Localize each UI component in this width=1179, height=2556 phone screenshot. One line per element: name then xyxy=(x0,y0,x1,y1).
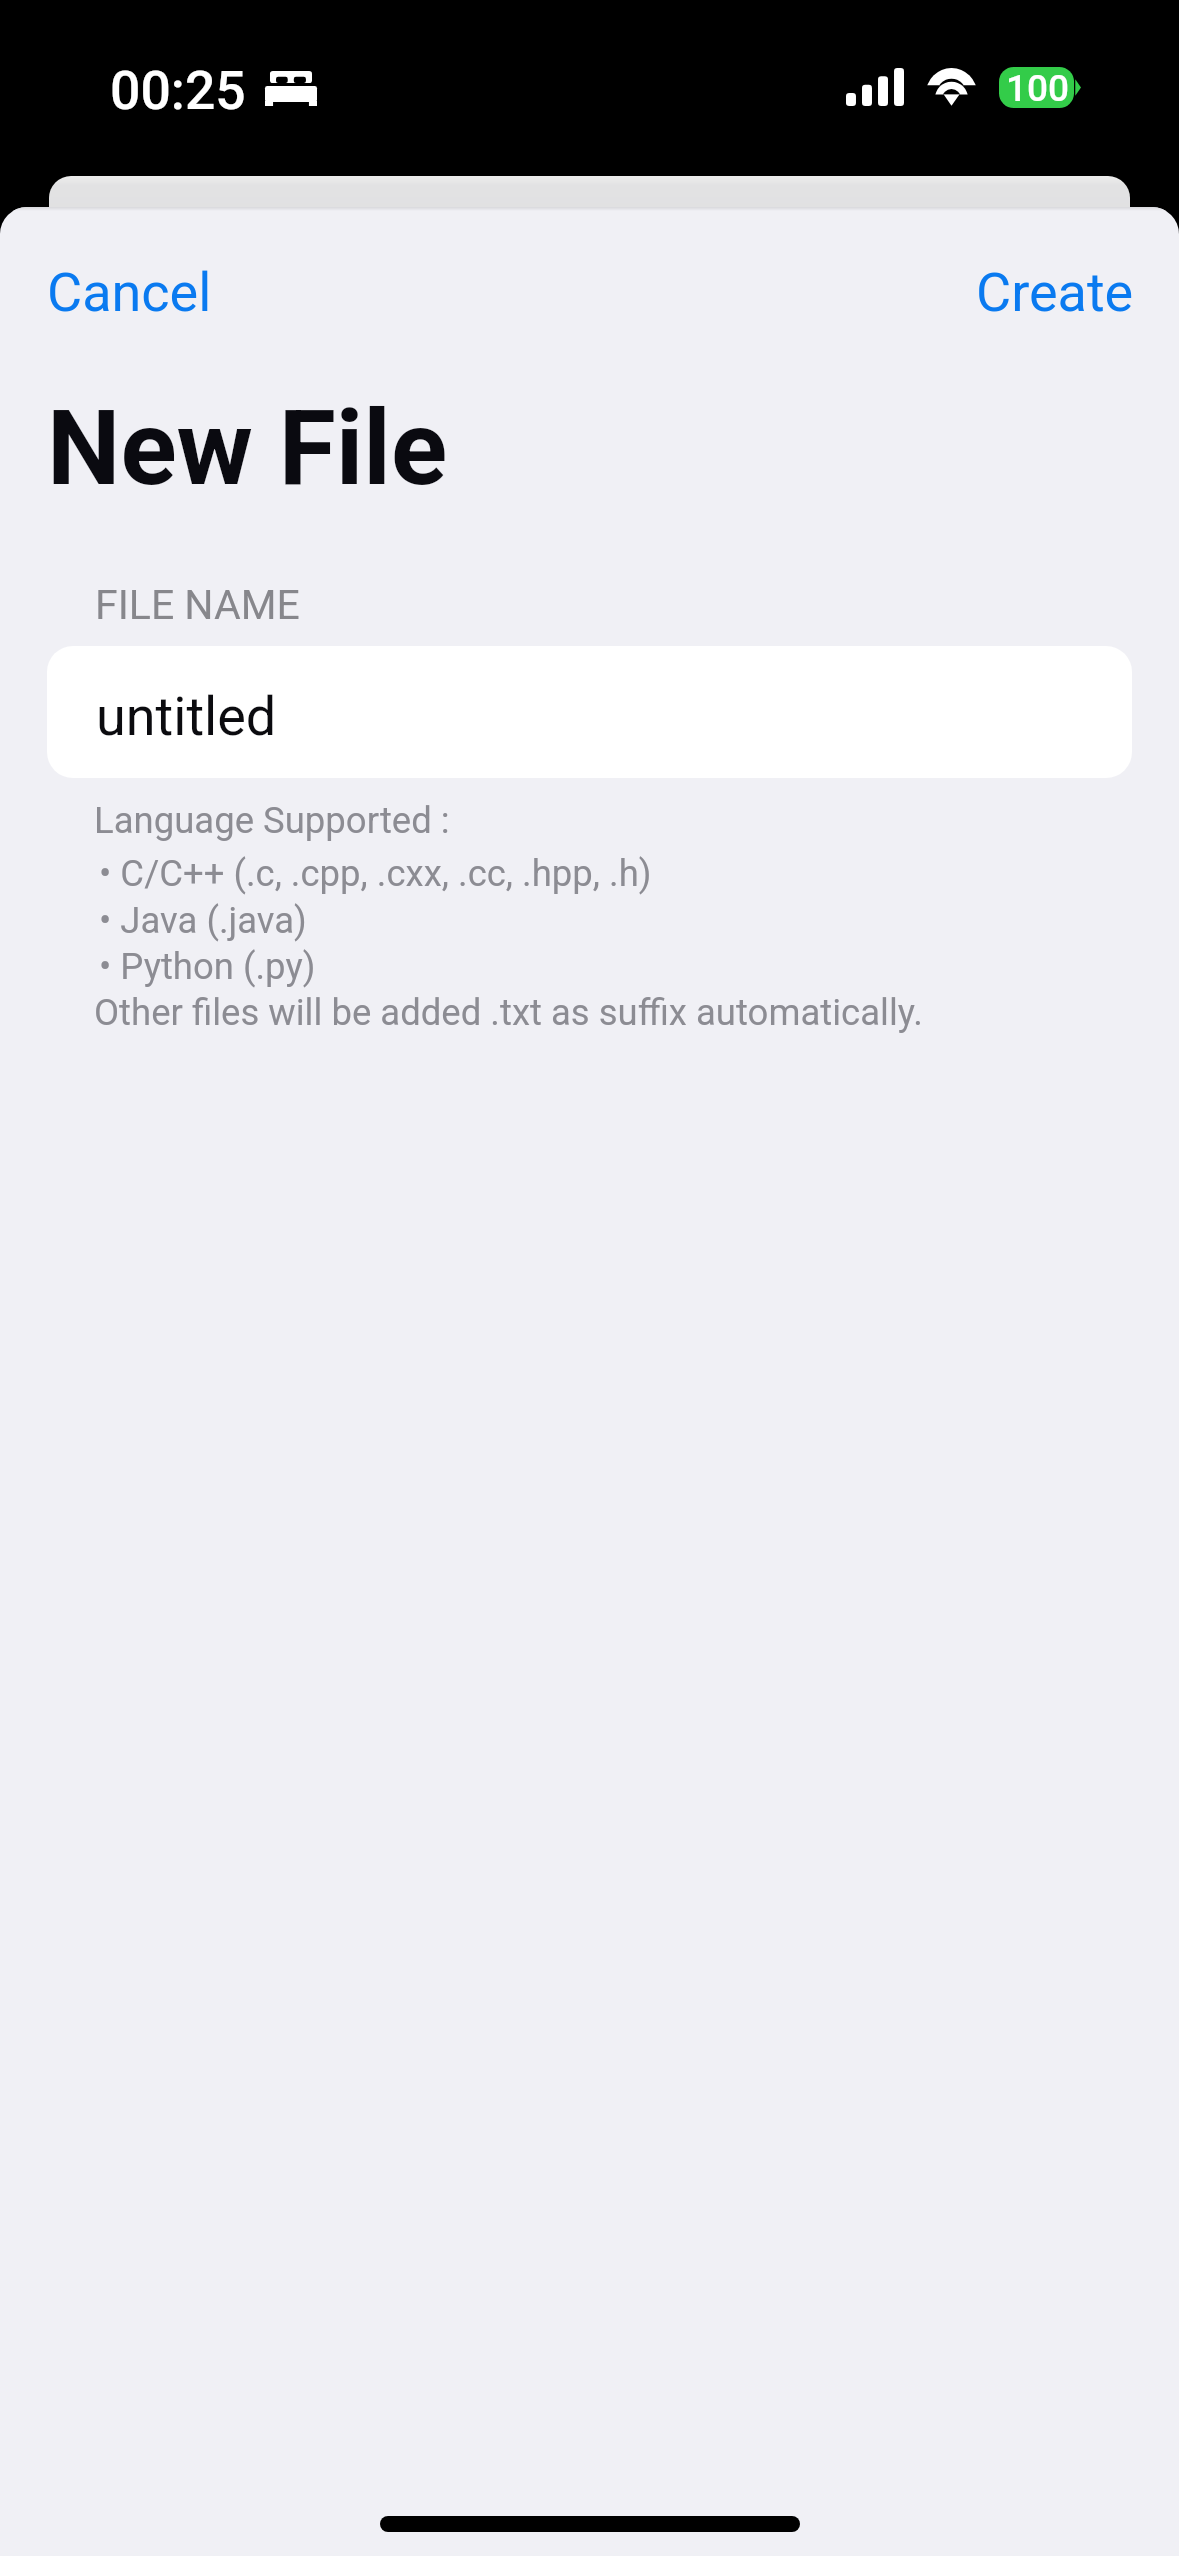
staticText: New File xyxy=(47,388,448,510)
staticText: Create xyxy=(976,261,1134,324)
other: Wi-Fi xyxy=(926,68,977,106)
staticText: 100 xyxy=(1006,67,1070,108)
other: Cellular signal xyxy=(846,68,904,106)
button[interactable]: Cancel xyxy=(29,253,230,332)
button[interactable]: Create xyxy=(958,253,1152,332)
staticText: • C/C++ (.c, .cpp, .cxx, .cc, .hpp, .h) xyxy=(99,852,652,895)
staticText: Language Supported : xyxy=(94,799,450,842)
staticText: • Python (.py) xyxy=(99,945,316,988)
staticText: 00:25 xyxy=(110,59,246,122)
staticText: • Java (.java) xyxy=(99,899,307,942)
other: Battery 100 percent xyxy=(999,67,1081,108)
staticText: Other files will be added .txt as suffix… xyxy=(94,991,923,1034)
staticText: FILE NAME xyxy=(95,581,300,629)
other: Sleep focus xyxy=(265,71,317,106)
staticText: Cancel xyxy=(47,261,212,324)
staticText: untitled xyxy=(96,685,277,748)
button[interactable]: untitled xyxy=(47,646,1132,778)
